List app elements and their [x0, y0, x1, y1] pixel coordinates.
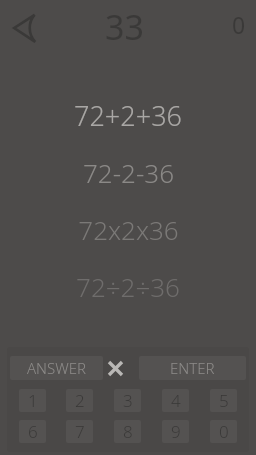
button[interactable]: 0 — [232, 9, 246, 40]
staticText: 1 — [28, 389, 38, 412]
staticText: 72x2x36 — [78, 212, 179, 247]
button[interactable]: Clear answer — [105, 356, 125, 380]
button[interactable]: 4 — [162, 389, 189, 412]
button[interactable]: Back — [6, 8, 50, 48]
button[interactable]: 72x2x36 — [0, 201, 256, 258]
staticText: 3 — [123, 389, 133, 412]
button[interactable]: 72÷2÷36 — [0, 258, 256, 315]
staticText: 6 — [28, 420, 38, 443]
button[interactable]: 6 — [19, 420, 46, 443]
staticText: 72+2+36 — [74, 97, 182, 134]
staticText: 72÷2÷36 — [76, 269, 180, 304]
staticText: 0 — [232, 9, 246, 40]
button[interactable]: 2 — [66, 389, 93, 412]
button[interactable]: 0 — [210, 420, 237, 443]
staticText: ENTER — [170, 358, 215, 378]
button[interactable]: 72+2+36 — [0, 87, 256, 144]
button[interactable]: 8 — [114, 420, 141, 443]
staticText: 9 — [171, 420, 181, 443]
button[interactable]: ENTER — [139, 356, 246, 380]
staticText: 0 — [219, 420, 229, 443]
staticText: 2 — [75, 389, 85, 412]
staticText: ANSWER — [27, 358, 87, 378]
button[interactable]: 72-2-36 — [0, 144, 256, 201]
button[interactable]: 9 — [162, 420, 189, 443]
button[interactable]: 5 — [210, 389, 237, 412]
staticText: 5 — [219, 389, 229, 412]
staticText: 8 — [123, 420, 133, 443]
button[interactable]: 7 — [66, 420, 93, 443]
button[interactable]: ANSWER — [10, 356, 103, 380]
staticText: 72-2-36 — [83, 155, 174, 190]
staticText: 7 — [75, 420, 85, 443]
staticText: 33 — [105, 4, 144, 50]
staticText: 4 — [171, 389, 181, 412]
button[interactable]: 3 — [114, 389, 141, 412]
